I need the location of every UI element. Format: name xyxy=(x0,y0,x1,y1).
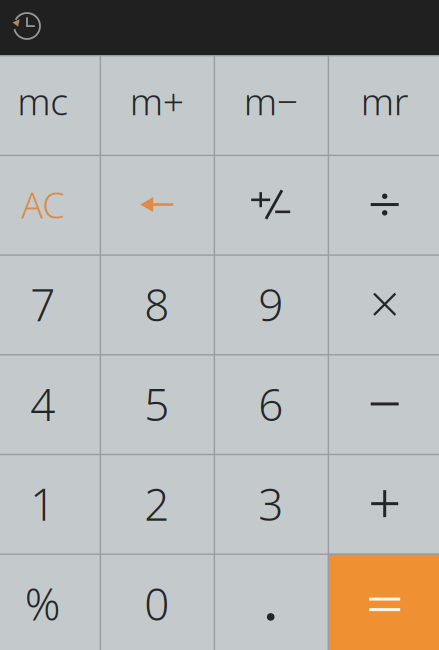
button[interactable]: % xyxy=(0,553,100,650)
button[interactable] xyxy=(328,354,439,454)
button[interactable] xyxy=(328,254,439,354)
staticText: 3 xyxy=(258,474,283,533)
button[interactable] xyxy=(328,454,439,553)
button[interactable] xyxy=(328,155,439,254)
button[interactable] xyxy=(100,155,214,254)
staticText: % xyxy=(25,574,61,632)
button[interactable] xyxy=(328,554,439,650)
staticText: mr xyxy=(361,76,409,126)
button[interactable]: 9 xyxy=(214,254,328,354)
button[interactable]: mr xyxy=(328,51,439,151)
button[interactable]: 5 xyxy=(100,354,214,454)
button[interactable]: 1 xyxy=(0,454,100,553)
button[interactable]: AC xyxy=(0,155,100,254)
button[interactable]: 4 xyxy=(0,354,100,454)
staticText: 4 xyxy=(30,375,55,433)
staticText: mc xyxy=(17,76,68,126)
button[interactable]: mc xyxy=(0,51,100,151)
button[interactable]: 2 xyxy=(100,454,214,553)
staticText: 7 xyxy=(30,275,55,333)
staticText: 1 xyxy=(30,474,55,533)
button[interactable] xyxy=(214,155,328,254)
button[interactable] xyxy=(214,553,328,650)
staticText: 2 xyxy=(144,474,169,533)
staticText: 9 xyxy=(258,275,283,333)
staticText: 8 xyxy=(144,275,169,333)
button[interactable]: 3 xyxy=(214,454,328,553)
button[interactable]: 7 xyxy=(0,254,100,354)
button[interactable]: m− xyxy=(214,51,328,151)
staticText: m+ xyxy=(130,76,184,126)
staticText: 6 xyxy=(258,375,283,433)
button[interactable]: 8 xyxy=(100,254,214,354)
button[interactable]: History xyxy=(4,3,50,49)
button[interactable]: 6 xyxy=(214,354,328,454)
button[interactable]: 0 xyxy=(100,553,214,650)
staticText: 5 xyxy=(144,375,169,433)
staticText: AC xyxy=(21,181,64,228)
staticText: 0 xyxy=(144,574,169,632)
button[interactable]: m+ xyxy=(100,51,214,151)
staticText: m− xyxy=(244,76,298,126)
